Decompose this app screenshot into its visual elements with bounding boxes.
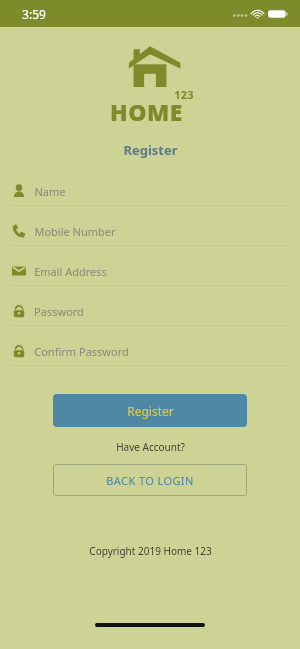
staticText: Copyright 2019 Home 123: [89, 544, 212, 558]
staticText: Email Address: [34, 264, 107, 279]
button[interactable]: Register: [53, 394, 247, 427]
button[interactable]: Password: [0, 297, 300, 337]
staticText: Register: [123, 141, 178, 159]
button[interactable]: BACK TO LOGIN: [53, 464, 247, 496]
staticText: BACK TO LOGIN: [106, 473, 194, 488]
button[interactable]: Password: [0, 337, 300, 377]
staticText: Have Account?: [116, 440, 185, 454]
button[interactable]: Name: [0, 177, 300, 217]
staticText: Password: [34, 304, 84, 319]
staticText: Name: [34, 184, 66, 199]
other: Mobile Number: [12, 224, 26, 238]
other: Password: [12, 344, 26, 358]
staticText: 3:59: [22, 6, 46, 22]
staticText: Confirm Password: [34, 344, 129, 359]
other: Email Address: [12, 264, 26, 278]
button[interactable]: Email Address: [0, 257, 300, 297]
other: Password: [12, 304, 26, 318]
staticText: Register: [127, 403, 174, 419]
staticText: HOME: [110, 96, 183, 127]
staticText: Mobile Number: [34, 224, 116, 239]
button[interactable]: Mobile Number: [0, 217, 300, 257]
other: Name: [12, 184, 26, 198]
staticText: 123: [174, 87, 194, 102]
